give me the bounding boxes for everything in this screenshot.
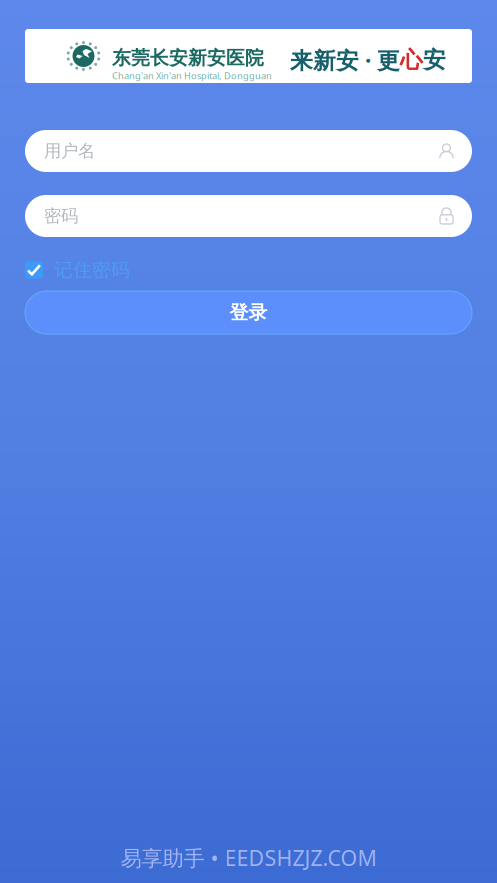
button[interactable]: 记住密码 (25, 257, 472, 283)
staticText: 安 (423, 46, 446, 74)
staticText: 密码 (44, 205, 78, 227)
staticText: 易享助手 • EEDSHZJZ.COM (120, 844, 376, 872)
staticText: 东莞长安新安医院 (112, 46, 264, 69)
button[interactable]: 密码 (25, 195, 472, 237)
button[interactable]: 登录 (25, 291, 472, 334)
staticText: Chang'an Xin'an Hospital, Dongguan (112, 69, 272, 82)
staticText: 心 (400, 46, 423, 74)
staticText: 登录 (229, 301, 267, 324)
staticText: 记住密码 (54, 258, 130, 281)
button[interactable]: 用户名 (25, 130, 472, 172)
staticText: 来新安 · 更 (290, 45, 400, 75)
staticText: 用户名 (44, 140, 95, 162)
